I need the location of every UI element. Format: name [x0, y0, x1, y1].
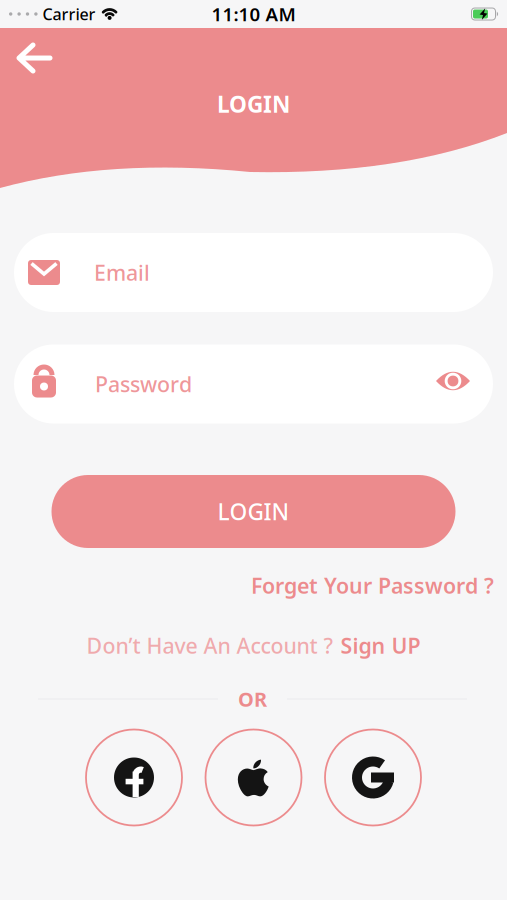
button[interactable]: LOGIN	[51, 475, 455, 548]
staticText: LOGIN	[217, 496, 289, 526]
button[interactable]: Sign in with Facebook	[86, 729, 182, 825]
staticText: Carrier	[43, 3, 96, 25]
button[interactable]: Sign UP	[340, 631, 420, 660]
staticText: Don’t Have An Account ?	[86, 631, 333, 660]
button[interactable]: Sign in with Google	[325, 729, 421, 825]
staticText: OR	[238, 686, 267, 712]
staticText: LOGIN	[217, 89, 290, 119]
staticText: 11:10 AM	[211, 2, 295, 26]
button[interactable]: Password	[14, 344, 493, 423]
staticText: Email	[94, 258, 150, 287]
button[interactable]: Forget Your Password ?	[251, 571, 494, 600]
button[interactable]: Back	[13, 41, 57, 75]
button[interactable]: Sign in with Apple	[205, 729, 301, 825]
staticText: Password	[95, 370, 192, 398]
staticText: Sign UP	[340, 631, 420, 660]
staticText: Forget Your Password ?	[251, 571, 494, 600]
button[interactable]: Email	[14, 233, 493, 312]
button[interactable]: Show password	[431, 361, 475, 401]
